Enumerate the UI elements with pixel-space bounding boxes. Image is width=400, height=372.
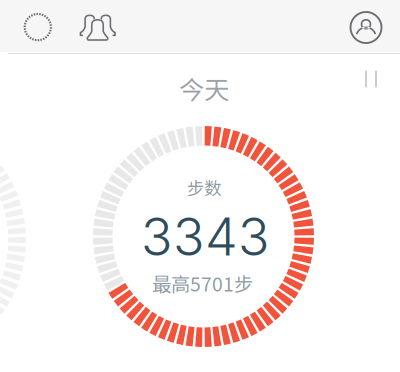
button[interactable]: Profile xyxy=(340,1,392,53)
button[interactable]: Activity rings xyxy=(12,1,64,53)
staticText: 3343 xyxy=(141,205,270,268)
button[interactable]: Friends xyxy=(73,2,123,54)
staticText: 今天 xyxy=(179,70,229,107)
button[interactable]: Pause xyxy=(355,64,387,94)
staticText: 最高5701步 xyxy=(152,269,253,297)
staticText: 步数 xyxy=(187,175,221,200)
